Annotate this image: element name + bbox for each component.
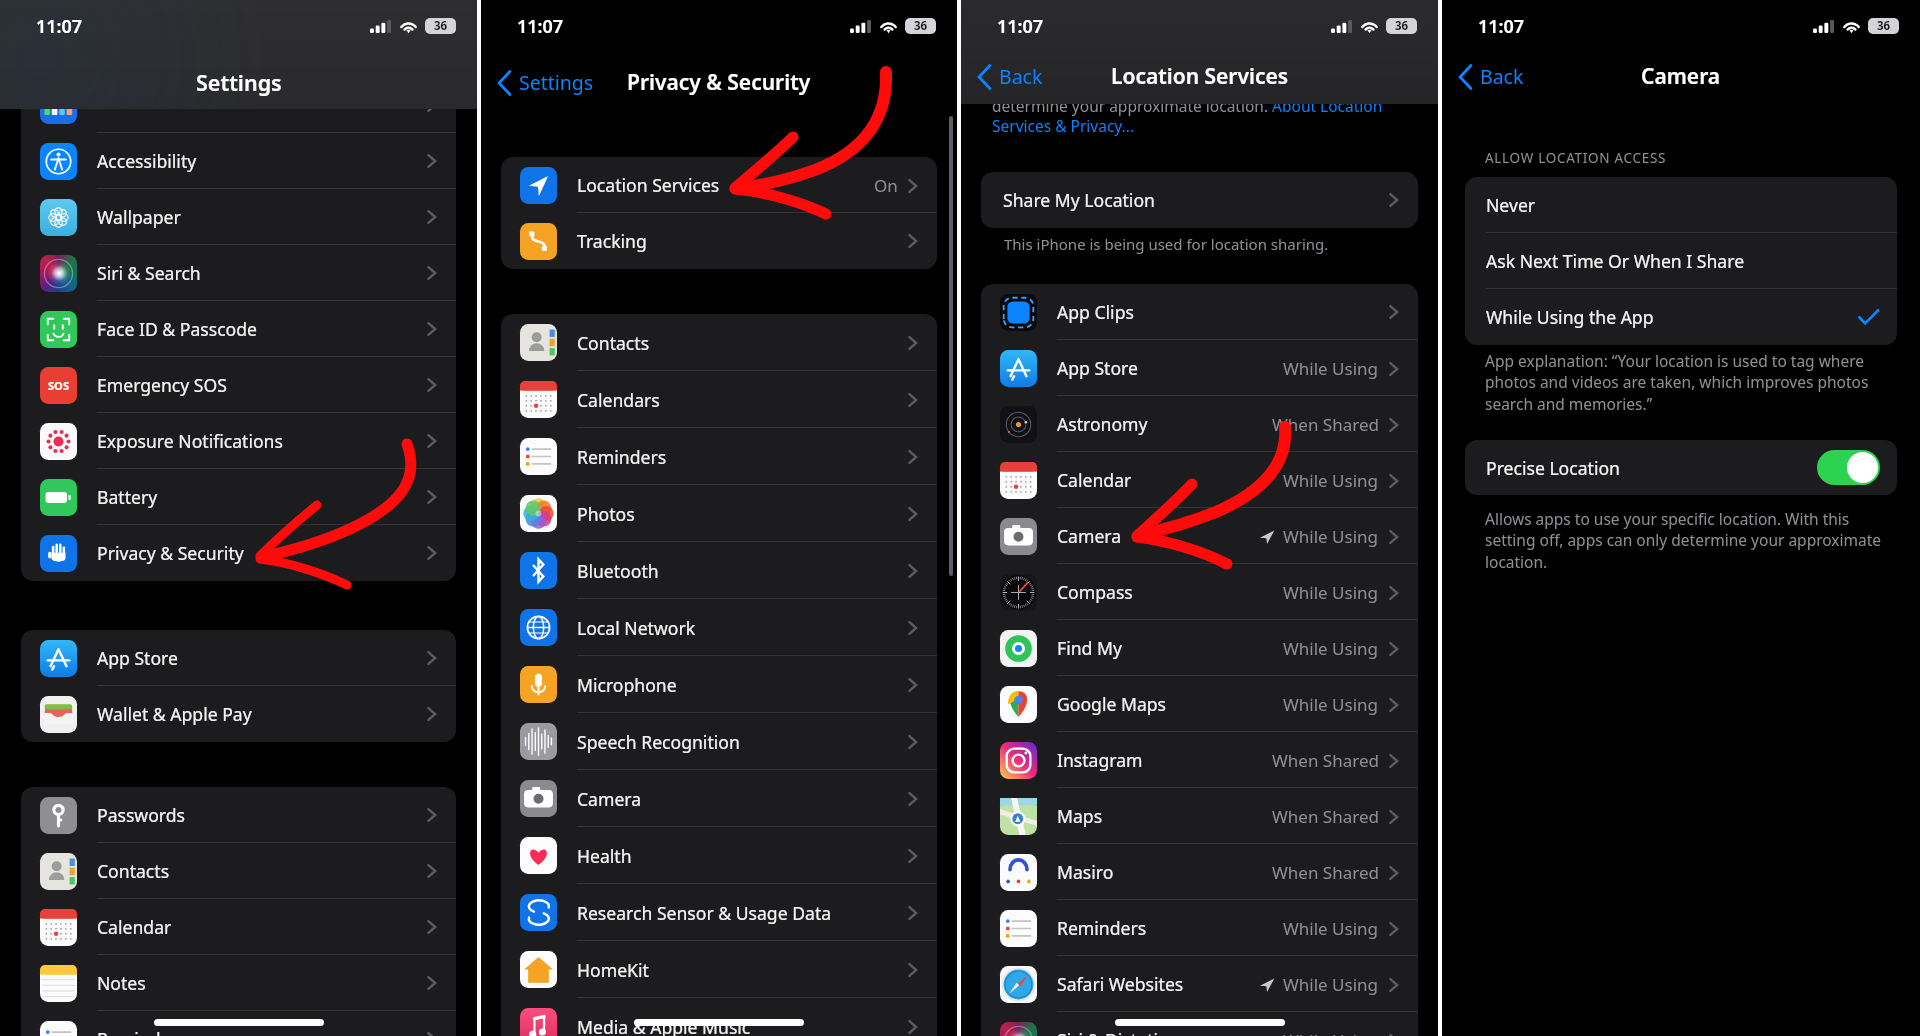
staticText: 11:07 xyxy=(36,14,83,39)
button[interactable]: Accessibility xyxy=(21,133,456,189)
button[interactable]: Calendars xyxy=(501,371,937,428)
staticText: App explanation: “Your location is used … xyxy=(1485,350,1890,415)
button[interactable]: Find My xyxy=(981,620,1418,676)
button[interactable]: SOS xyxy=(21,357,456,413)
staticText: 36 xyxy=(1877,18,1891,34)
button[interactable]: Precise Location toggle, on xyxy=(1817,450,1880,485)
staticText: Media & Apple Music xyxy=(577,1015,751,1036)
staticText: App Clips xyxy=(1057,300,1134,324)
button[interactable]: Research Sensor & Usage Data xyxy=(501,884,937,941)
button[interactable]: Calendar xyxy=(981,452,1418,508)
button[interactable]: Never xyxy=(1465,177,1897,233)
staticText: Location Services xyxy=(577,173,720,197)
staticText: Reminders xyxy=(577,445,667,469)
button[interactable]: Safari Websites xyxy=(981,956,1418,1012)
button[interactable]: While Using the App xyxy=(1465,289,1897,345)
button[interactable]: Microphone xyxy=(501,656,937,713)
staticText: ALLOW LOCATION ACCESS xyxy=(1485,149,1667,167)
button[interactable]: Wallpaper xyxy=(21,189,456,245)
staticText: Privacy & Security xyxy=(97,541,244,565)
button[interactable]: Media & Apple Music xyxy=(501,998,937,1036)
button[interactable]: Precise Location xyxy=(1465,440,1897,495)
staticText: Passwords xyxy=(97,803,186,827)
staticText: When Shared xyxy=(1272,749,1379,772)
button[interactable]: Siri & Dictation xyxy=(981,1012,1418,1036)
button[interactable]: Google Maps xyxy=(981,676,1418,732)
button[interactable]: Reminders xyxy=(981,900,1418,956)
staticText: Emergency SOS xyxy=(97,373,227,397)
button[interactable]: Contacts xyxy=(21,843,456,899)
staticText: Reminders xyxy=(1057,916,1147,940)
button[interactable]: Health xyxy=(501,827,937,884)
staticText: 11:07 xyxy=(1478,14,1525,39)
staticText: Share My Location xyxy=(1003,188,1155,212)
button[interactable]: Local Network xyxy=(501,599,937,656)
button[interactable]: Speech Recognition xyxy=(501,713,937,770)
button[interactable]: Camera xyxy=(981,508,1418,564)
button[interactable]: Settings xyxy=(493,65,598,100)
button[interactable]: HomeKit xyxy=(501,941,937,998)
button[interactable]: Compass xyxy=(981,564,1418,620)
staticText: Calendar xyxy=(1057,468,1132,492)
button[interactable]: Masiro xyxy=(981,844,1418,900)
staticText: Exposure Notifications xyxy=(97,429,283,453)
staticText: 11:07 xyxy=(517,14,564,39)
staticText: Photos xyxy=(577,502,635,526)
staticText: Find My xyxy=(1057,636,1122,660)
staticText: While Using xyxy=(1283,581,1379,604)
button[interactable]: Exposure Notifications xyxy=(21,413,456,469)
button[interactable]: Maps xyxy=(981,788,1418,844)
button[interactable]: Instagram xyxy=(981,732,1418,788)
button[interactable] xyxy=(21,77,456,133)
staticText: Tracking xyxy=(577,229,647,253)
button[interactable]: Back xyxy=(973,59,1047,94)
staticText: Calendar xyxy=(97,915,172,939)
staticText: Precise Location xyxy=(1486,456,1620,480)
button[interactable]: App Store xyxy=(21,630,456,686)
staticText: This iPhone is being used for location s… xyxy=(1004,234,1329,254)
button[interactable]: Privacy & Security xyxy=(21,525,456,581)
button[interactable]: App Clips xyxy=(981,284,1418,340)
staticText: When Shared xyxy=(1272,805,1379,828)
staticText: Instagram xyxy=(1057,748,1143,772)
button[interactable]: Battery xyxy=(21,469,456,525)
staticText: Notes xyxy=(97,971,146,995)
staticText: Calendars xyxy=(577,388,660,412)
staticText: Siri & Dictation xyxy=(1057,1028,1180,1036)
staticText: Accessibility xyxy=(97,149,197,173)
button[interactable]: Passwords xyxy=(21,787,456,843)
button[interactable]: Ask Next Time Or When I Share xyxy=(1465,233,1897,289)
staticText: Face ID & Passcode xyxy=(97,317,257,341)
staticText: Location Services xyxy=(1111,62,1289,91)
staticText: Health xyxy=(577,844,632,868)
staticText: Masiro xyxy=(1057,860,1114,884)
button[interactable]: Tracking xyxy=(501,213,937,269)
button[interactable]: Share My Location xyxy=(981,172,1418,228)
button[interactable]: Reminders xyxy=(21,1011,456,1036)
button[interactable]: Astronomy xyxy=(981,396,1418,452)
button[interactable]: Calendar xyxy=(21,899,456,955)
staticText: Back xyxy=(1480,63,1524,90)
button[interactable]: App Store xyxy=(981,340,1418,396)
button[interactable]: Camera xyxy=(501,770,937,827)
button[interactable]: Location Services xyxy=(501,157,937,213)
button[interactable]: Bluetooth xyxy=(501,542,937,599)
button[interactable]: Notes xyxy=(21,955,456,1011)
staticText: While Using the App xyxy=(1486,305,1654,329)
button[interactable]: Back xyxy=(1454,59,1528,94)
staticText: App Store xyxy=(97,646,178,670)
staticText: When Shared xyxy=(1272,861,1379,884)
staticText: Settings xyxy=(196,68,282,97)
button[interactable]: Contacts xyxy=(501,314,937,371)
staticText: Camera xyxy=(577,787,642,811)
button[interactable]: Siri & Search xyxy=(21,245,456,301)
staticText: Speech Recognition xyxy=(577,730,740,754)
button[interactable]: Face ID & Passcode xyxy=(21,301,456,357)
button[interactable]: Reminders xyxy=(501,428,937,485)
staticText: Maps xyxy=(1057,804,1103,828)
button[interactable]: Photos xyxy=(501,485,937,542)
staticText: Camera xyxy=(1057,524,1122,548)
staticText: Siri & Search xyxy=(97,261,201,285)
button[interactable]: Wallet & Apple Pay xyxy=(21,686,456,742)
staticText: 36 xyxy=(914,18,928,34)
